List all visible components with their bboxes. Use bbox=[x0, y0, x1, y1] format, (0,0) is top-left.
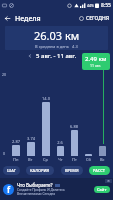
staticText: Неделя bbox=[15, 14, 41, 24]
button[interactable]: 2.87 bbox=[8, 73, 23, 156]
button[interactable]: Next week bbox=[79, 51, 88, 60]
staticText: Впечатлениями Сегодня bbox=[17, 192, 56, 196]
button[interactable]: ВРЕМЯ bbox=[61, 166, 83, 175]
button[interactable]: СЕГОДНЯ bbox=[76, 12, 113, 25]
staticText: Чт bbox=[58, 157, 63, 162]
staticText: 2.6 bbox=[57, 140, 63, 145]
staticText: 3.74 bbox=[27, 136, 35, 141]
button[interactable]: 14.0 bbox=[38, 73, 53, 156]
staticText: 11 авг. bbox=[90, 63, 102, 68]
button[interactable] bbox=[95, 73, 109, 156]
button[interactable]: 2.6 bbox=[53, 73, 67, 156]
staticText: Пн bbox=[13, 157, 19, 162]
staticText: f bbox=[7, 184, 11, 195]
staticText: Сб bbox=[86, 157, 91, 162]
button[interactable]: 2.49 км bbox=[82, 53, 110, 70]
button[interactable]: КАЛОРИЯ bbox=[26, 166, 54, 175]
staticText: Пт bbox=[72, 157, 77, 162]
button[interactable]: РАССТ bbox=[89, 166, 110, 175]
staticText: Создайте Профиль И Делитесь bbox=[17, 188, 65, 192]
staticText: Сайт bbox=[97, 187, 107, 192]
staticText: 8:55 bbox=[101, 2, 111, 9]
staticText: В среднем в день 4.3 bbox=[35, 44, 78, 49]
button[interactable]: Сайт bbox=[94, 186, 110, 193]
staticText: РАССТ bbox=[93, 168, 106, 173]
button[interactable]: Close ad bbox=[105, 179, 112, 183]
button[interactable]: Previous week bbox=[25, 51, 34, 60]
staticText: 26.03 км bbox=[34, 28, 80, 43]
button[interactable]: 6.88 bbox=[67, 73, 81, 156]
staticText: КАЛОРИЯ bbox=[30, 168, 50, 173]
button[interactable]: Back bbox=[0, 11, 15, 26]
staticText: 44% bbox=[87, 3, 94, 8]
button[interactable]: ШАГ bbox=[3, 166, 20, 175]
button[interactable]: 26.03 км bbox=[5, 26, 108, 50]
staticText: 2.87 bbox=[12, 139, 20, 144]
staticText: 5 авг. - 11 авг. bbox=[36, 52, 77, 60]
staticText: Вт bbox=[28, 157, 33, 162]
button[interactable]: Facebook bbox=[3, 184, 14, 195]
staticText: 14.0 bbox=[42, 96, 50, 101]
staticText: ШАГ bbox=[7, 168, 16, 173]
staticText: 2.49 км bbox=[85, 55, 107, 63]
button[interactable]: 3.74 bbox=[23, 73, 38, 156]
staticText: ⓧ bbox=[107, 179, 110, 183]
staticText: Вс bbox=[100, 157, 105, 162]
staticText: 0 bbox=[3, 151, 6, 156]
staticText: 20 bbox=[2, 72, 7, 77]
staticText: 6.88 bbox=[70, 124, 78, 129]
staticText: ВРЕМЯ bbox=[65, 168, 79, 173]
staticText: Что Выбираете? bbox=[17, 182, 53, 188]
staticText: СЕГОДНЯ bbox=[86, 15, 110, 22]
button[interactable] bbox=[81, 73, 95, 156]
staticText: Ср bbox=[43, 157, 48, 162]
